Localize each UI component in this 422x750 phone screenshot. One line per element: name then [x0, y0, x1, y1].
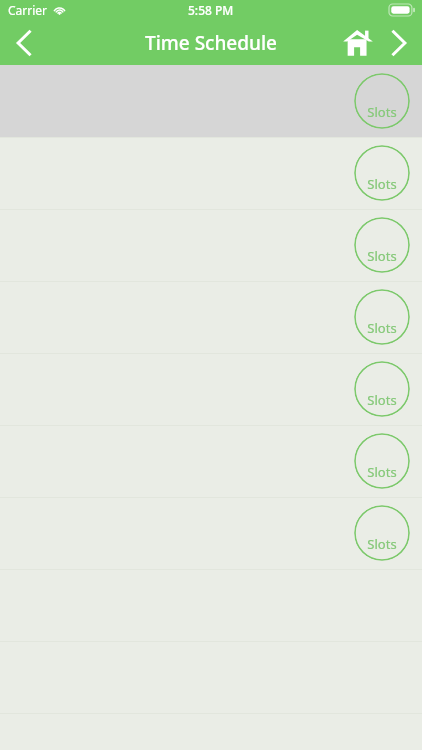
button[interactable]: Slots [354, 289, 410, 345]
staticText: Slots [367, 103, 397, 121]
staticText: Carrier [8, 2, 48, 18]
button[interactable]: Slots [354, 145, 410, 201]
button[interactable]: Slots [0, 281, 422, 353]
button[interactable]: Slots [0, 497, 422, 569]
staticText: Slots [367, 319, 397, 337]
button[interactable]: Slots [354, 361, 410, 417]
button[interactable]: Forward [380, 20, 418, 65]
button[interactable]: Slots [0, 137, 422, 209]
staticText: Slots [367, 391, 397, 409]
staticText: 5:58 PM [188, 2, 234, 18]
button[interactable]: Slots [354, 433, 410, 489]
button[interactable]: Slots [0, 65, 422, 137]
button[interactable]: Home [336, 20, 380, 65]
staticText: Slots [367, 175, 397, 193]
button[interactable]: Slots [354, 73, 410, 129]
button[interactable]: Slots [0, 353, 422, 425]
button[interactable]: Slots [354, 505, 410, 561]
button[interactable]: Slots [0, 425, 422, 497]
button[interactable]: Slots [0, 209, 422, 281]
staticText: Slots [367, 247, 397, 265]
button[interactable]: Back [0, 20, 46, 65]
staticText: Slots [367, 463, 397, 481]
staticText: Time Schedule [145, 30, 277, 56]
button[interactable]: Slots [354, 217, 410, 273]
staticText: Slots [367, 535, 397, 553]
